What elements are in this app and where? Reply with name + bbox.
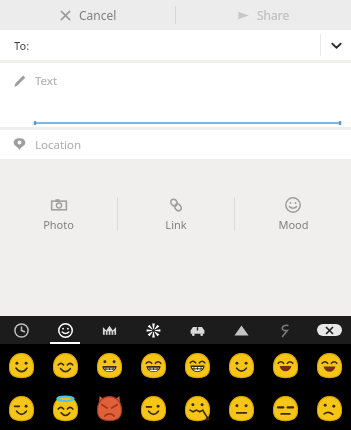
button[interactable]: Emoji 11 (87, 387, 131, 430)
button[interactable]: Emoji 3 (87, 344, 131, 387)
button[interactable]: Photo (0, 191, 117, 237)
staticText: Mood (278, 217, 309, 232)
button[interactable]: Emoji 1 (0, 344, 43, 387)
staticText: Share (257, 7, 290, 23)
button[interactable]: Expand recipients (321, 30, 351, 60)
staticText: Location (35, 137, 82, 153)
button[interactable]: Emoji 7 (263, 344, 307, 387)
button[interactable]: Emoji 5 (175, 344, 219, 387)
button[interactable]: Emoji 12 (131, 387, 175, 430)
button[interactable]: Symbols (263, 316, 307, 344)
staticText: Cancel (79, 7, 117, 23)
button[interactable]: Recent (0, 316, 43, 344)
staticText: Text (35, 73, 58, 89)
button[interactable]: Emoji 4 (131, 344, 175, 387)
button[interactable]: Emoji 13 (175, 387, 219, 430)
button[interactable]: Backspace (307, 316, 351, 344)
button[interactable]: Emoji 14 (219, 387, 263, 430)
button[interactable]: Animals (87, 316, 131, 344)
button[interactable]: Emoji 10 (43, 387, 87, 430)
button[interactable]: Emoji 2 (43, 344, 87, 387)
button[interactable]: To: (0, 30, 351, 60)
button[interactable]: Cancel (0, 0, 175, 30)
staticText: Photo (43, 217, 74, 232)
button[interactable]: Travel (175, 316, 219, 344)
button[interactable]: Text (0, 63, 351, 127)
button[interactable]: Emoji 6 (219, 344, 263, 387)
button[interactable]: Emoji 9 (0, 387, 43, 430)
button[interactable]: Emoji 16 (307, 387, 351, 430)
button[interactable]: Emoji 15 (263, 387, 307, 430)
button[interactable]: Mood (235, 191, 351, 237)
staticText: To: (14, 38, 30, 53)
button[interactable]: Smileys (43, 316, 87, 344)
staticText: Link (165, 217, 187, 232)
button[interactable]: Location (0, 130, 351, 159)
button[interactable]: Link (118, 191, 234, 237)
button[interactable]: Food (131, 316, 175, 344)
button[interactable]: Share (176, 0, 351, 30)
button[interactable]: Emoji 8 (307, 344, 351, 387)
button[interactable]: Objects (219, 316, 263, 344)
